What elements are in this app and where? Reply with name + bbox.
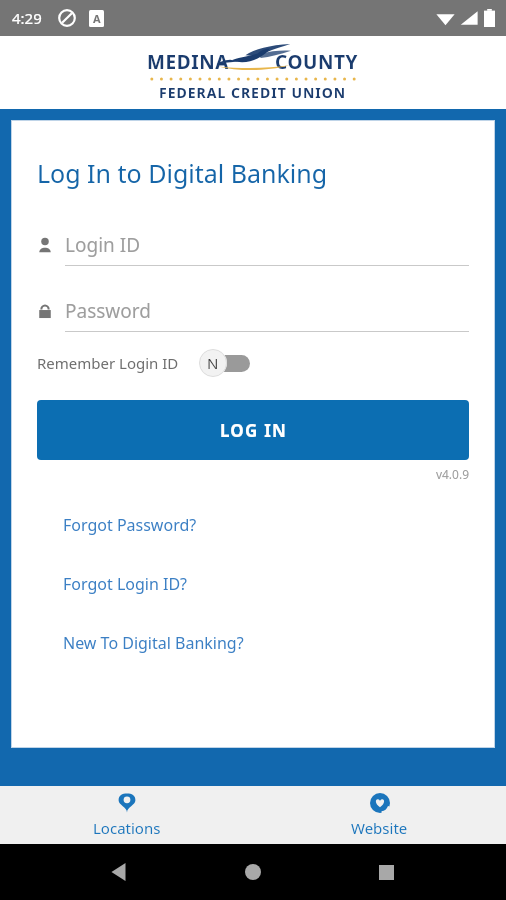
staticText: N xyxy=(207,353,219,373)
staticText: COUNTY xyxy=(275,49,359,75)
staticText: New To Digital Banking? xyxy=(63,632,244,654)
other: Back xyxy=(110,863,128,881)
button[interactable]: New To Digital Banking? xyxy=(37,630,469,656)
button[interactable]: LOG IN xyxy=(37,400,469,460)
staticText: Forgot Password? xyxy=(63,514,197,536)
staticText: Remember Login ID xyxy=(37,353,179,373)
button[interactable]: Forgot Password? xyxy=(37,512,469,538)
button[interactable]: Forgot Login ID? xyxy=(37,571,469,597)
staticText: MEDINA xyxy=(147,49,230,75)
staticText: LOG IN xyxy=(220,419,287,442)
staticText: 4:29 xyxy=(12,8,42,28)
button[interactable]: N xyxy=(199,348,251,378)
staticText: Forgot Login ID? xyxy=(63,573,188,595)
staticText: A xyxy=(93,11,101,26)
staticText: FEDERAL CREDIT UNION xyxy=(159,83,347,102)
staticText: Password xyxy=(65,298,151,324)
staticText: Log In to Digital Banking xyxy=(37,156,328,190)
staticText: Locations xyxy=(93,818,161,838)
button[interactable]: Locations xyxy=(0,786,253,844)
button[interactable]: Website xyxy=(253,786,506,844)
other: Home xyxy=(245,864,261,880)
staticText: Website xyxy=(351,818,408,838)
staticText: Login ID xyxy=(65,232,141,258)
staticText: v4.0.9 xyxy=(37,466,469,482)
